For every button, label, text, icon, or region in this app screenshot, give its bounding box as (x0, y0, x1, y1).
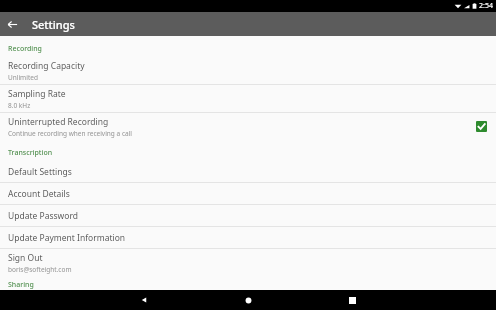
button[interactable]: Uninterrupted Recording toggle (475, 120, 488, 133)
button[interactable]: Home (238, 290, 258, 310)
button[interactable]: Recent apps (342, 290, 362, 310)
button[interactable]: Uninterrupted Recording (0, 113, 496, 140)
button[interactable]: Recording Capacity (0, 57, 496, 84)
staticText: Settings (32, 17, 75, 32)
button[interactable]: Update Payment Information (0, 227, 496, 248)
staticText: Update Password (8, 210, 78, 222)
staticText: boris@softeight.com (8, 265, 72, 274)
staticText: Sampling Rate (8, 88, 66, 100)
staticText: Default Settings (8, 166, 72, 178)
staticText: Account Details (8, 188, 70, 200)
staticText: Sign Out (8, 252, 43, 264)
staticText: Unlimited (8, 73, 38, 82)
button[interactable]: Account Details (0, 183, 496, 204)
staticText: Update Payment Information (8, 232, 126, 244)
button[interactable]: Back (134, 290, 154, 310)
staticText: Transcription (8, 148, 53, 158)
button[interactable]: Sampling Rate (0, 85, 496, 112)
button[interactable]: Sign Out (0, 249, 496, 276)
staticText: Recording Capacity (8, 60, 85, 72)
staticText: Uninterrupted Recording (8, 116, 109, 128)
button[interactable]: Default Settings (0, 161, 496, 182)
staticText: 2:54 (479, 1, 493, 11)
staticText: Sharing (8, 280, 34, 290)
button[interactable]: Back (0, 12, 24, 36)
button[interactable]: Update Password (0, 205, 496, 226)
staticText: 8.0 kHz (8, 101, 31, 110)
staticText: Continue recording when receiving a call (8, 129, 133, 138)
staticText: Recording (8, 44, 42, 54)
